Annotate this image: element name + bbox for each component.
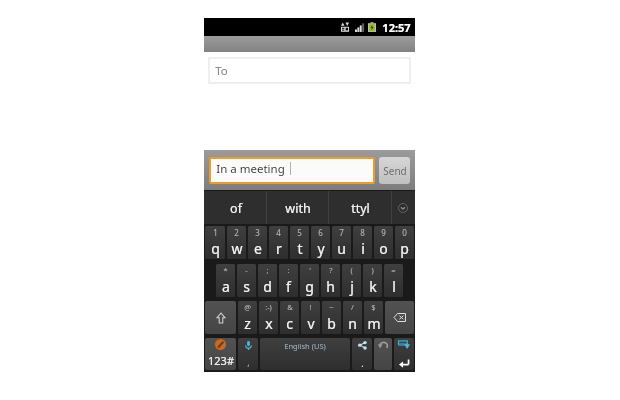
button[interactable]: Voice input xyxy=(238,338,258,370)
button[interactable]: 5 xyxy=(290,226,309,259)
button[interactable]: ) xyxy=(363,264,382,297)
button[interactable]: :-) xyxy=(259,301,278,334)
staticText: y xyxy=(317,239,325,258)
button[interactable]: ( xyxy=(342,264,361,297)
staticText: ; xyxy=(266,265,269,275)
staticText: l xyxy=(392,277,396,296)
staticText: In a meeting xyxy=(216,161,285,177)
button[interactable]: ttyl xyxy=(329,191,391,224)
staticText: ) xyxy=(371,265,374,275)
staticText: j xyxy=(350,277,354,296)
button[interactable]: with xyxy=(267,191,329,224)
button[interactable]: Send xyxy=(379,157,410,184)
staticText: f xyxy=(286,277,291,296)
staticText: with xyxy=(285,200,311,217)
button[interactable]: = xyxy=(384,264,403,297)
staticText: ( xyxy=(350,265,353,275)
staticText: :-) xyxy=(265,302,272,312)
staticText: of xyxy=(230,200,242,217)
staticText: k xyxy=(369,277,377,296)
staticText: ttyl xyxy=(351,200,370,217)
staticText: Send xyxy=(383,164,407,178)
staticText: 7 xyxy=(339,227,344,238)
staticText: a xyxy=(222,277,230,296)
staticText: , xyxy=(247,356,250,368)
button[interactable]: : xyxy=(279,264,298,297)
button[interactable]: 3 xyxy=(248,226,267,259)
button[interactable]: $ xyxy=(364,301,383,334)
staticText: = xyxy=(391,265,396,275)
staticText: t xyxy=(297,239,303,258)
button[interactable]: Settings xyxy=(352,338,372,370)
button[interactable]: of xyxy=(204,191,267,224)
staticText: n xyxy=(348,314,357,333)
staticText: g xyxy=(305,277,314,296)
button[interactable]: & xyxy=(280,301,299,334)
button[interactable]: Undo xyxy=(374,338,392,370)
staticText: 2 xyxy=(234,227,239,238)
staticText: w xyxy=(231,239,243,258)
staticText: 8 xyxy=(360,227,365,238)
button[interactable]: Enter xyxy=(394,338,414,370)
button[interactable]: ' xyxy=(300,264,319,297)
button[interactable]: 6 xyxy=(311,226,330,259)
staticText: s xyxy=(243,277,250,296)
button[interactable]: 8 xyxy=(353,226,372,259)
button[interactable]: * xyxy=(216,264,235,297)
button[interactable]: 2 xyxy=(227,226,246,259)
staticText: z xyxy=(244,314,251,333)
staticText: ! xyxy=(309,302,312,312)
button[interactable]: ? xyxy=(321,264,340,297)
staticText: / xyxy=(351,302,354,312)
button[interactable]: To xyxy=(209,58,410,83)
staticText: ? xyxy=(329,265,333,275)
button[interactable]: 4 xyxy=(269,226,288,259)
button[interactable]: 123# xyxy=(205,338,236,370)
staticText: @ xyxy=(244,302,251,312)
staticText: ' xyxy=(309,265,311,275)
staticText: c xyxy=(286,314,293,333)
button[interactable]: @ xyxy=(238,301,257,334)
staticText: . xyxy=(361,357,364,369)
staticText: i xyxy=(361,239,365,258)
staticText: English (US) xyxy=(284,341,326,351)
staticText: - xyxy=(245,265,248,275)
staticText: m xyxy=(367,314,381,333)
button[interactable]: In a meeting xyxy=(211,159,373,182)
staticText: q xyxy=(211,239,220,258)
staticText: p xyxy=(400,239,409,258)
staticText: ~ xyxy=(329,302,334,312)
staticText: 6 xyxy=(318,227,323,238)
button[interactable]: ! xyxy=(301,301,320,334)
staticText: 9 xyxy=(381,227,386,238)
button[interactable]: / xyxy=(343,301,362,334)
button[interactable]: Space, English (US) xyxy=(260,338,350,370)
staticText: o xyxy=(379,239,388,258)
button[interactable]: 1 xyxy=(205,226,225,259)
staticText: & xyxy=(287,302,293,312)
button[interactable]: Shift xyxy=(205,301,236,334)
staticText: d xyxy=(263,277,272,296)
staticText: To xyxy=(215,63,228,79)
staticText: 4 xyxy=(276,227,281,238)
staticText: $ xyxy=(371,302,376,312)
button[interactable]: 7 xyxy=(332,226,351,259)
button[interactable]: ~ xyxy=(322,301,341,334)
staticText: v xyxy=(307,314,315,333)
staticText: : xyxy=(287,265,290,275)
staticText: 5 xyxy=(297,227,302,238)
staticText: u xyxy=(337,239,346,258)
button[interactable]: Backspace xyxy=(385,301,414,334)
button[interactable]: More suggestions xyxy=(391,191,415,224)
button[interactable]: 9 xyxy=(374,226,393,259)
staticText: 12:57 xyxy=(382,20,411,35)
staticText: x xyxy=(265,314,273,333)
staticText: e xyxy=(254,239,262,258)
staticText: 0 xyxy=(402,227,407,238)
button[interactable]: ; xyxy=(258,264,277,297)
staticText: r xyxy=(276,239,282,258)
button[interactable]: - xyxy=(237,264,256,297)
staticText: 123# xyxy=(208,353,234,368)
staticText: b xyxy=(327,314,336,333)
button[interactable]: 0 xyxy=(395,226,414,259)
